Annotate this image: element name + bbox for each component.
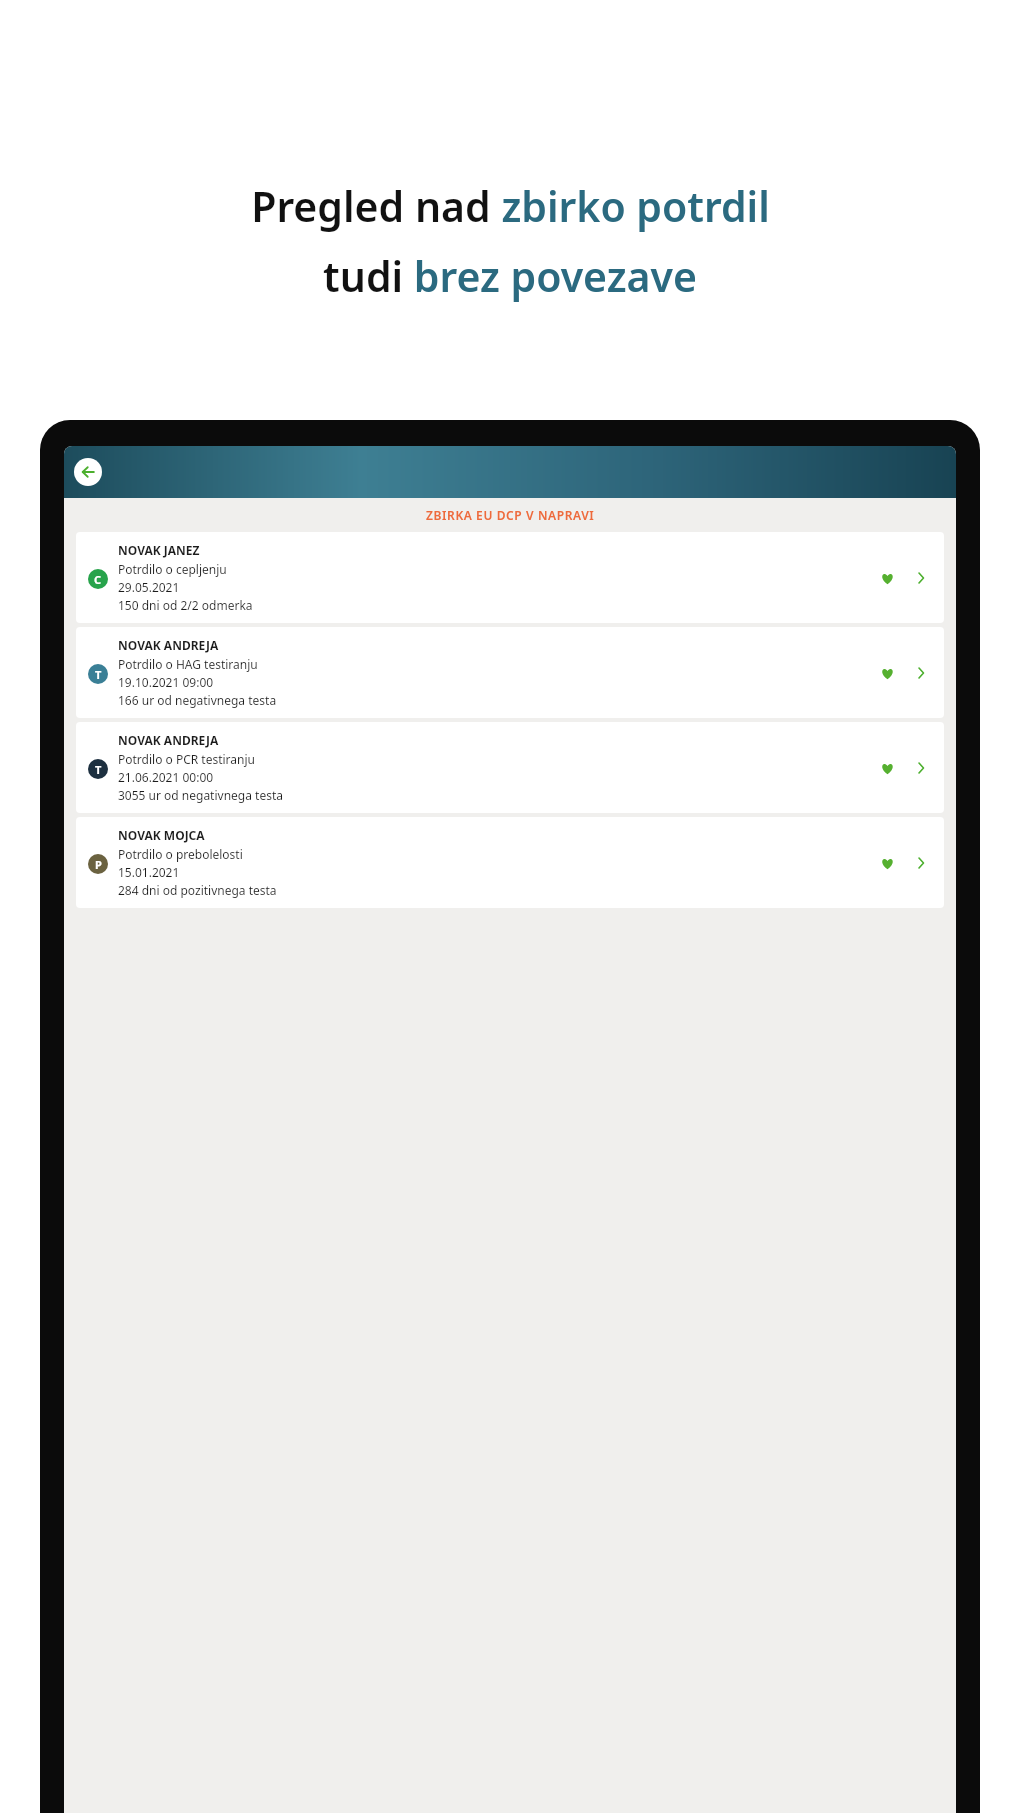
button[interactable]: T [76, 627, 944, 718]
staticText: Potrdilo o HAG testiranju [118, 656, 258, 672]
staticText: 150 dni od 2/2 odmerka [118, 597, 253, 613]
button[interactable]: Favourite [874, 660, 900, 686]
staticText: 29.05.2021 [118, 579, 180, 595]
staticText: C [94, 572, 102, 587]
staticText: Pregled nad zbirko potrdil [251, 178, 770, 234]
staticText: T [95, 667, 102, 682]
button[interactable]: Open details [908, 565, 934, 591]
button[interactable]: Open details [908, 755, 934, 781]
staticText: 15.01.2021 [118, 864, 180, 880]
staticText: NOVAK ANDREJA [118, 732, 219, 748]
staticText: 166 ur od negativnega testa [118, 692, 277, 708]
button[interactable]: Open details [908, 850, 934, 876]
button[interactable]: C [76, 532, 944, 623]
staticText: NOVAK ANDREJA [118, 637, 219, 653]
staticText: Potrdilo o cepljenju [118, 561, 227, 577]
staticText: ZBIRKA EU DCP V NAPRAVI [426, 507, 595, 523]
button[interactable]: Back [74, 458, 102, 486]
staticText: Potrdilo o PCR testiranju [118, 751, 255, 767]
button[interactable]: Favourite [874, 565, 900, 591]
button[interactable]: Favourite [874, 755, 900, 781]
staticText: 19.10.2021 09:00 [118, 674, 214, 690]
staticText: T [95, 762, 102, 777]
button[interactable]: Favourite [874, 850, 900, 876]
staticText: NOVAK JANEZ [118, 542, 200, 558]
button[interactable]: P [76, 817, 944, 908]
staticText: P [95, 857, 102, 872]
staticText: Potrdilo o prebolelosti [118, 846, 243, 862]
staticText: 21.06.2021 00:00 [118, 769, 214, 785]
staticText: 3055 ur od negativnega testa [118, 787, 283, 803]
button[interactable]: Open details [908, 660, 934, 686]
staticText: tudi brez povezave [323, 248, 697, 304]
staticText: NOVAK MOJCA [118, 827, 205, 843]
button[interactable]: T [76, 722, 944, 813]
staticText: 284 dni od pozitivnega testa [118, 882, 277, 898]
